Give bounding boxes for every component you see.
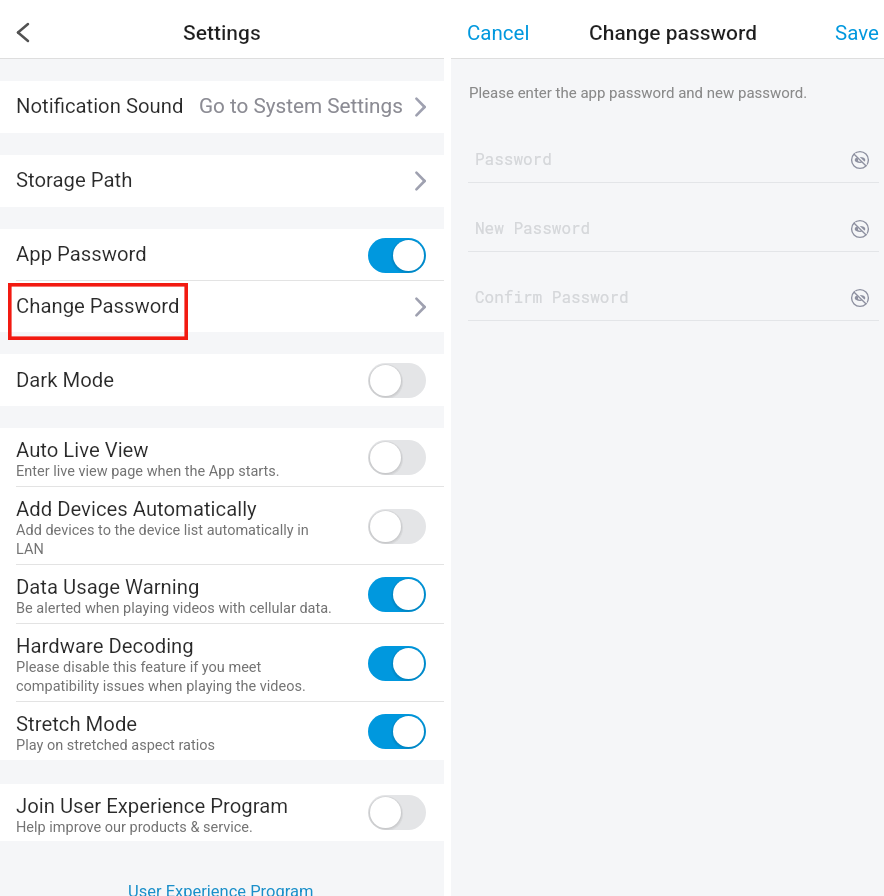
staticText: Add devices to the device list automatic… bbox=[16, 522, 335, 558]
staticText: Storage Path bbox=[16, 168, 133, 192]
button[interactable]: Password bbox=[451, 150, 884, 190]
button[interactable]: Switch off bbox=[368, 795, 426, 830]
staticText: Data Usage Warning bbox=[16, 575, 200, 599]
button[interactable]: Storage Path bbox=[0, 155, 444, 207]
staticText: Go to System Settings bbox=[199, 94, 403, 118]
staticText: Cancel bbox=[467, 21, 530, 45]
staticText: App Password bbox=[16, 242, 147, 266]
staticText: Join User Experience Program bbox=[16, 794, 289, 818]
button[interactable]: Dark Mode bbox=[0, 354, 444, 406]
staticText: Settings bbox=[183, 21, 261, 46]
staticText: Be alerted when playing videos with cell… bbox=[16, 600, 335, 617]
button[interactable]: Change Password bbox=[0, 281, 444, 332]
button[interactable]: User Experience Program bbox=[128, 882, 314, 896]
button[interactable]: Add Devices Automatically bbox=[0, 487, 444, 565]
button[interactable]: App Password bbox=[0, 229, 444, 281]
staticText: Auto Live View bbox=[16, 438, 149, 462]
button[interactable]: Cancel bbox=[467, 20, 530, 44]
staticText: Play on stretched aspect ratios bbox=[16, 737, 335, 754]
staticText: Add Devices Automatically bbox=[16, 497, 257, 521]
button[interactable]: Switch on bbox=[368, 714, 426, 749]
staticText: Please disable this feature if you meet … bbox=[16, 659, 335, 695]
button[interactable]: Switch on bbox=[368, 646, 426, 681]
staticText: Change password bbox=[589, 21, 758, 46]
button[interactable]: Stretch Mode bbox=[0, 702, 444, 760]
staticText: Stretch Mode bbox=[16, 712, 138, 736]
staticText: Save bbox=[835, 21, 879, 45]
button[interactable]: Save bbox=[835, 20, 879, 44]
staticText: Please enter the app password and new pa… bbox=[469, 84, 808, 102]
button[interactable]: Notification Sound bbox=[0, 81, 444, 133]
button[interactable]: Switch off bbox=[368, 440, 426, 475]
staticText: New Password bbox=[475, 217, 591, 238]
button[interactable]: Show password bbox=[846, 215, 874, 243]
button[interactable]: Auto Live View bbox=[0, 428, 444, 487]
button[interactable]: Join User Experience Program bbox=[0, 784, 444, 841]
staticText: Change Password bbox=[16, 294, 180, 318]
button[interactable]: New Password bbox=[451, 219, 884, 259]
staticText: Enter live view page when the App starts… bbox=[16, 463, 335, 480]
button[interactable]: Back bbox=[4, 13, 42, 51]
staticText: Notification Sound bbox=[16, 94, 184, 118]
staticText: Hardware Decoding bbox=[16, 634, 194, 658]
staticText: Confirm Password bbox=[475, 286, 629, 307]
button[interactable]: Show password bbox=[846, 284, 874, 312]
button[interactable]: Switch off bbox=[368, 363, 426, 398]
staticText: Password bbox=[475, 148, 552, 169]
button[interactable]: Switch on bbox=[368, 238, 426, 273]
button[interactable]: Switch off bbox=[368, 509, 426, 544]
staticText: Dark Mode bbox=[16, 368, 115, 392]
staticText: Help improve our products & service. bbox=[16, 819, 335, 836]
button[interactable]: Show password bbox=[846, 146, 874, 174]
button[interactable]: Data Usage Warning bbox=[0, 565, 444, 624]
button[interactable]: Confirm Password bbox=[451, 288, 884, 328]
button[interactable]: Switch on bbox=[368, 577, 426, 612]
button[interactable]: Hardware Decoding bbox=[0, 624, 444, 702]
